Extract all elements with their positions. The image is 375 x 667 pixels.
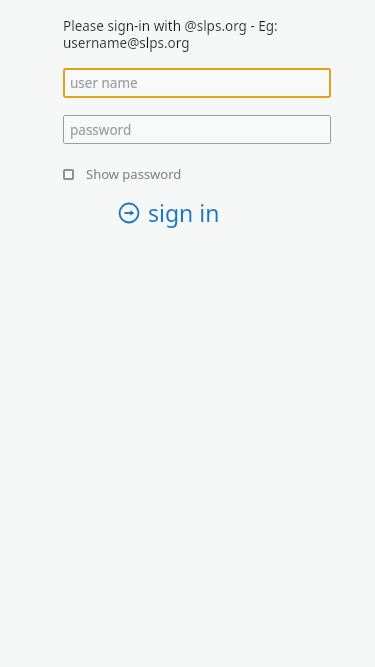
staticText: Please sign-in with @slps.org - Eg: user… bbox=[63, 17, 278, 52]
staticText: sign in bbox=[148, 197, 220, 228]
button[interactable]: user name bbox=[63, 68, 331, 98]
staticText: password bbox=[70, 121, 132, 139]
button[interactable]: Sign in bbox=[118, 194, 220, 231]
staticText: Show password bbox=[86, 165, 182, 183]
button[interactable]: password bbox=[63, 115, 331, 144]
button[interactable]: Show password bbox=[63, 163, 182, 185]
staticText: user name bbox=[70, 74, 138, 92]
other: Sign in bbox=[118, 202, 140, 224]
